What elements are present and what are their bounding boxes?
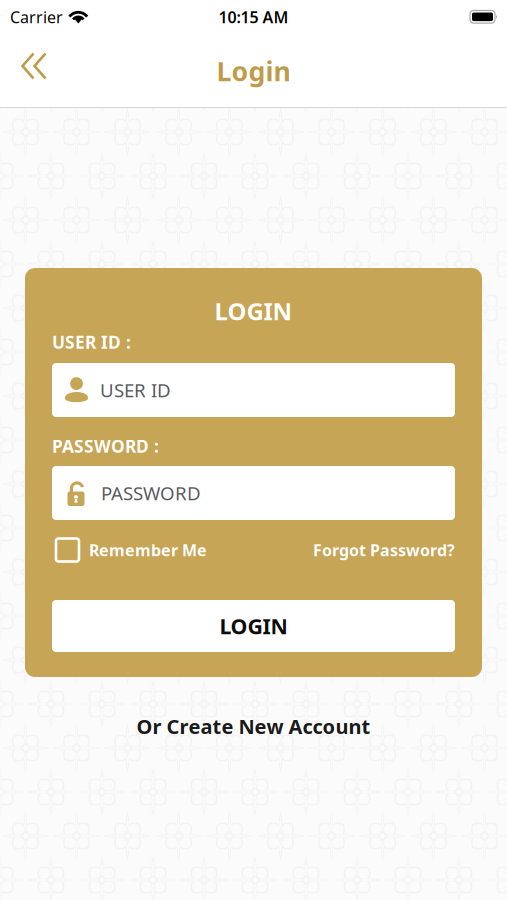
staticText: PASSWORD: [101, 481, 201, 505]
staticText: LOGIN: [214, 295, 292, 327]
staticText: PASSWORD :: [52, 434, 159, 457]
button[interactable]: Remember Me: [52, 535, 207, 565]
staticText: Forgot Password?: [313, 539, 455, 561]
button[interactable]: LOGIN: [52, 600, 455, 652]
staticText: Login: [216, 53, 290, 89]
button[interactable]: Back: [0, 45, 71, 97]
staticText: USER ID: [100, 378, 171, 402]
staticText: Remember Me: [89, 539, 207, 561]
button[interactable]: Forgot Password?: [313, 535, 455, 565]
staticText: Carrier: [10, 6, 63, 28]
staticText: LOGIN: [219, 612, 287, 640]
button[interactable]: Or Create New Account: [122, 705, 384, 748]
staticText: 10:15 AM: [218, 6, 288, 28]
staticText: Or Create New Account: [136, 713, 370, 740]
staticText: USER ID :: [52, 330, 131, 353]
